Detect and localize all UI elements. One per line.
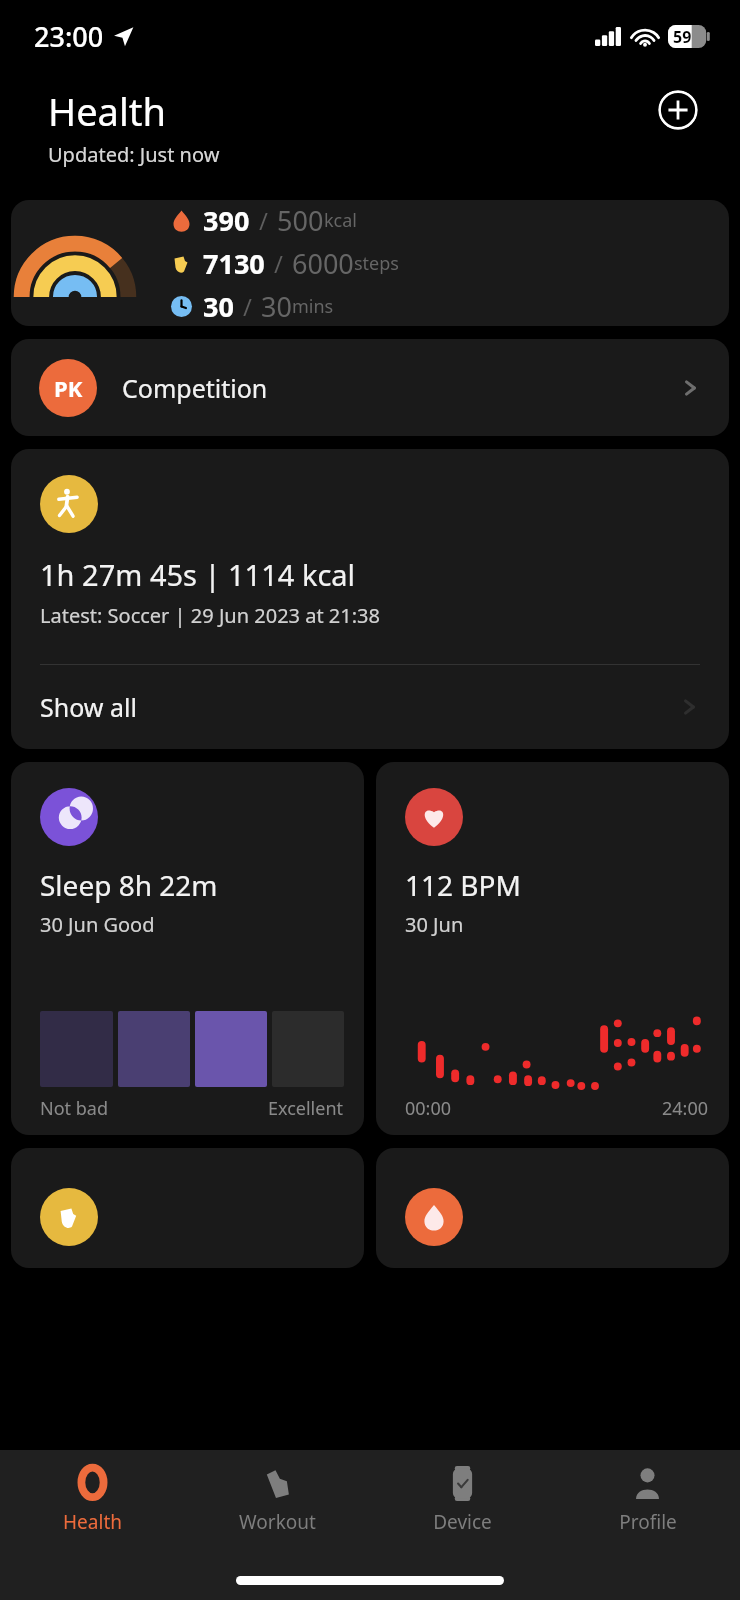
staticText: Competition xyxy=(122,371,268,405)
staticText: 00:00 xyxy=(405,1096,452,1121)
staticText: 390 xyxy=(203,202,250,239)
staticText: 23:00 xyxy=(34,18,104,55)
staticText: steps xyxy=(354,251,399,276)
button[interactable]: 390 xyxy=(11,200,729,326)
staticText: Health xyxy=(48,85,166,137)
staticText: Profile xyxy=(619,1509,677,1535)
staticText: Latest: Soccer | 29 Jun 2023 at 21:38 xyxy=(40,602,380,629)
staticText: / xyxy=(243,290,252,323)
staticText: Excellent xyxy=(268,1096,344,1121)
staticText: 30 xyxy=(261,288,292,325)
staticText: Not bad xyxy=(40,1096,108,1121)
button[interactable] xyxy=(376,1148,729,1268)
button[interactable]: 112 BPM xyxy=(376,762,729,1135)
staticText: 24:00 xyxy=(662,1096,709,1121)
staticText: / xyxy=(274,247,283,280)
staticText: 112 BPM xyxy=(405,866,521,904)
staticText: 7130 xyxy=(203,245,265,282)
button[interactable]: Health xyxy=(0,1450,185,1550)
button[interactable]: Workout xyxy=(185,1450,370,1550)
staticText: mins xyxy=(292,294,334,319)
staticText: 1h 27m 45s | 1114 kcal xyxy=(40,555,356,594)
staticText: 500 xyxy=(277,202,324,239)
staticText: 30 Jun xyxy=(405,911,464,938)
button[interactable]: PK xyxy=(11,339,729,436)
button[interactable]: Sleep 8h 22m xyxy=(11,762,364,1135)
staticText: Workout xyxy=(239,1509,316,1535)
staticText: 59 xyxy=(673,26,692,48)
staticText: Sleep 8h 22m xyxy=(40,866,218,904)
staticText: kcal xyxy=(324,208,357,233)
staticText: Updated: Just now xyxy=(48,141,220,168)
button[interactable]: Add xyxy=(658,90,698,130)
button[interactable] xyxy=(11,1148,364,1268)
staticText: Device xyxy=(433,1509,492,1535)
staticText: PK xyxy=(54,373,83,403)
button[interactable]: Profile xyxy=(555,1450,740,1550)
staticText: 30 Jun Good xyxy=(40,911,155,938)
staticText: Health xyxy=(63,1509,122,1535)
staticText: 30 xyxy=(203,288,234,325)
staticText: / xyxy=(259,204,268,237)
button[interactable]: Show all xyxy=(11,665,729,749)
button[interactable]: Device xyxy=(370,1450,555,1550)
staticText: Show all xyxy=(40,690,137,724)
staticText: 6000 xyxy=(292,245,354,282)
